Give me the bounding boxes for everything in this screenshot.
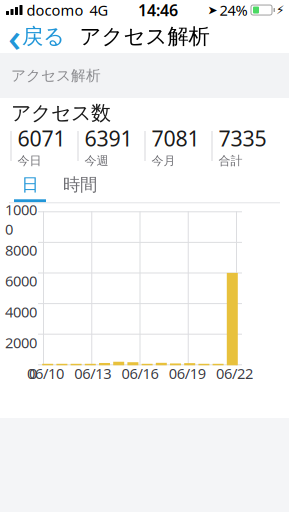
- staticText: 6071: [17, 124, 65, 152]
- button[interactable]: ‹: [0, 20, 73, 53]
- staticText: 2000: [5, 333, 37, 352]
- staticText: アクセス解析: [11, 66, 101, 84]
- staticText: 06/10: [27, 364, 64, 383]
- staticText: 6000: [5, 271, 37, 291]
- staticText: 時間: [63, 174, 97, 195]
- staticText: 0: [29, 364, 37, 383]
- staticText: 6391: [84, 124, 132, 152]
- staticText: 06/22: [216, 364, 253, 383]
- staticText: アクセス解析: [79, 23, 209, 50]
- staticText: 戻る: [22, 23, 65, 50]
- staticText: 日: [21, 174, 38, 195]
- staticText: 今月: [151, 153, 175, 168]
- staticText: ➤: [207, 3, 217, 17]
- staticText: 7335: [218, 124, 266, 152]
- staticText: 4000: [5, 302, 37, 321]
- button[interactable]: 日: [0, 174, 46, 202]
- staticText: 24%: [219, 0, 247, 20]
- staticText: docomo: [26, 0, 83, 20]
- button[interactable]: 時間: [46, 174, 100, 202]
- staticText: 06/16: [121, 364, 158, 383]
- staticText: 7081: [151, 124, 199, 152]
- staticText: 10000: [5, 200, 37, 239]
- staticText: アクセス数: [11, 101, 111, 125]
- staticText: 06/13: [74, 364, 111, 383]
- staticText: 06/19: [169, 364, 206, 383]
- staticText: 今日: [17, 153, 41, 168]
- staticText: ⚡︎: [276, 3, 284, 17]
- staticText: 合計: [218, 153, 242, 168]
- staticText: ‹: [8, 10, 21, 63]
- staticText: 今週: [84, 153, 108, 168]
- staticText: 4G: [89, 0, 108, 20]
- staticText: 8000: [5, 240, 37, 260]
- staticText: 14:46: [138, 0, 178, 21]
